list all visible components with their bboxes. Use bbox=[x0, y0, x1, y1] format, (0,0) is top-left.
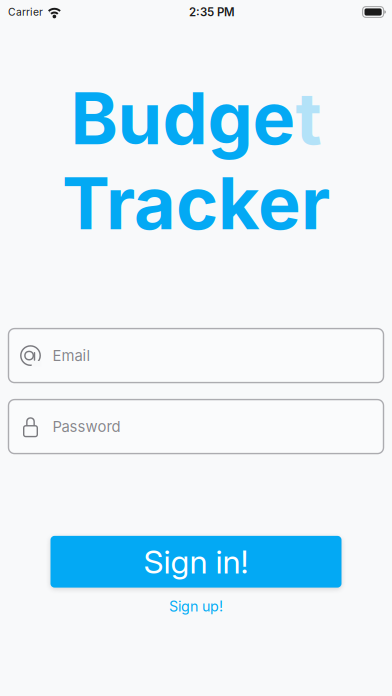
staticText: Carrier bbox=[8, 6, 43, 18]
staticText: 2:35 PM bbox=[189, 5, 235, 19]
staticText: Sign in! bbox=[143, 542, 248, 581]
staticText: Password bbox=[52, 418, 120, 435]
button[interactable]: Sign up! bbox=[159, 595, 233, 618]
button[interactable]: Password bbox=[8, 400, 383, 454]
staticText: Email bbox=[52, 347, 90, 364]
staticText: Budge bbox=[70, 75, 295, 161]
staticText: t bbox=[295, 75, 321, 161]
button[interactable]: Sign in! bbox=[50, 536, 341, 588]
staticText: Tracker bbox=[62, 160, 330, 247]
staticText: Sign up! bbox=[169, 598, 223, 615]
button[interactable]: Email bbox=[8, 329, 383, 383]
